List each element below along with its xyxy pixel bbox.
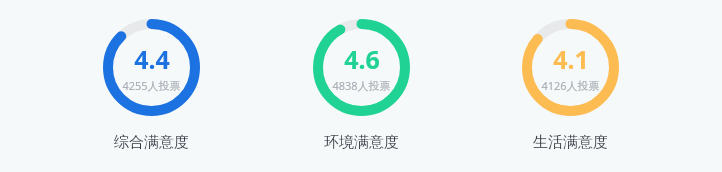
button[interactable]: 4.4 xyxy=(103,19,200,152)
button[interactable]: 4.6 xyxy=(313,19,410,152)
staticText: 4.4 xyxy=(134,42,170,76)
staticText: 环境满意度 xyxy=(324,133,399,152)
staticText: 4126人投票 xyxy=(541,78,600,93)
staticText: 4.1 xyxy=(553,42,589,76)
staticText: 4.6 xyxy=(344,42,380,76)
staticText: 4255人投票 xyxy=(122,78,181,93)
staticText: 综合满意度 xyxy=(114,133,189,152)
button[interactable]: 4.1 xyxy=(522,19,619,152)
staticText: 生活满意度 xyxy=(533,133,608,152)
staticText: 4838人投票 xyxy=(332,78,391,93)
